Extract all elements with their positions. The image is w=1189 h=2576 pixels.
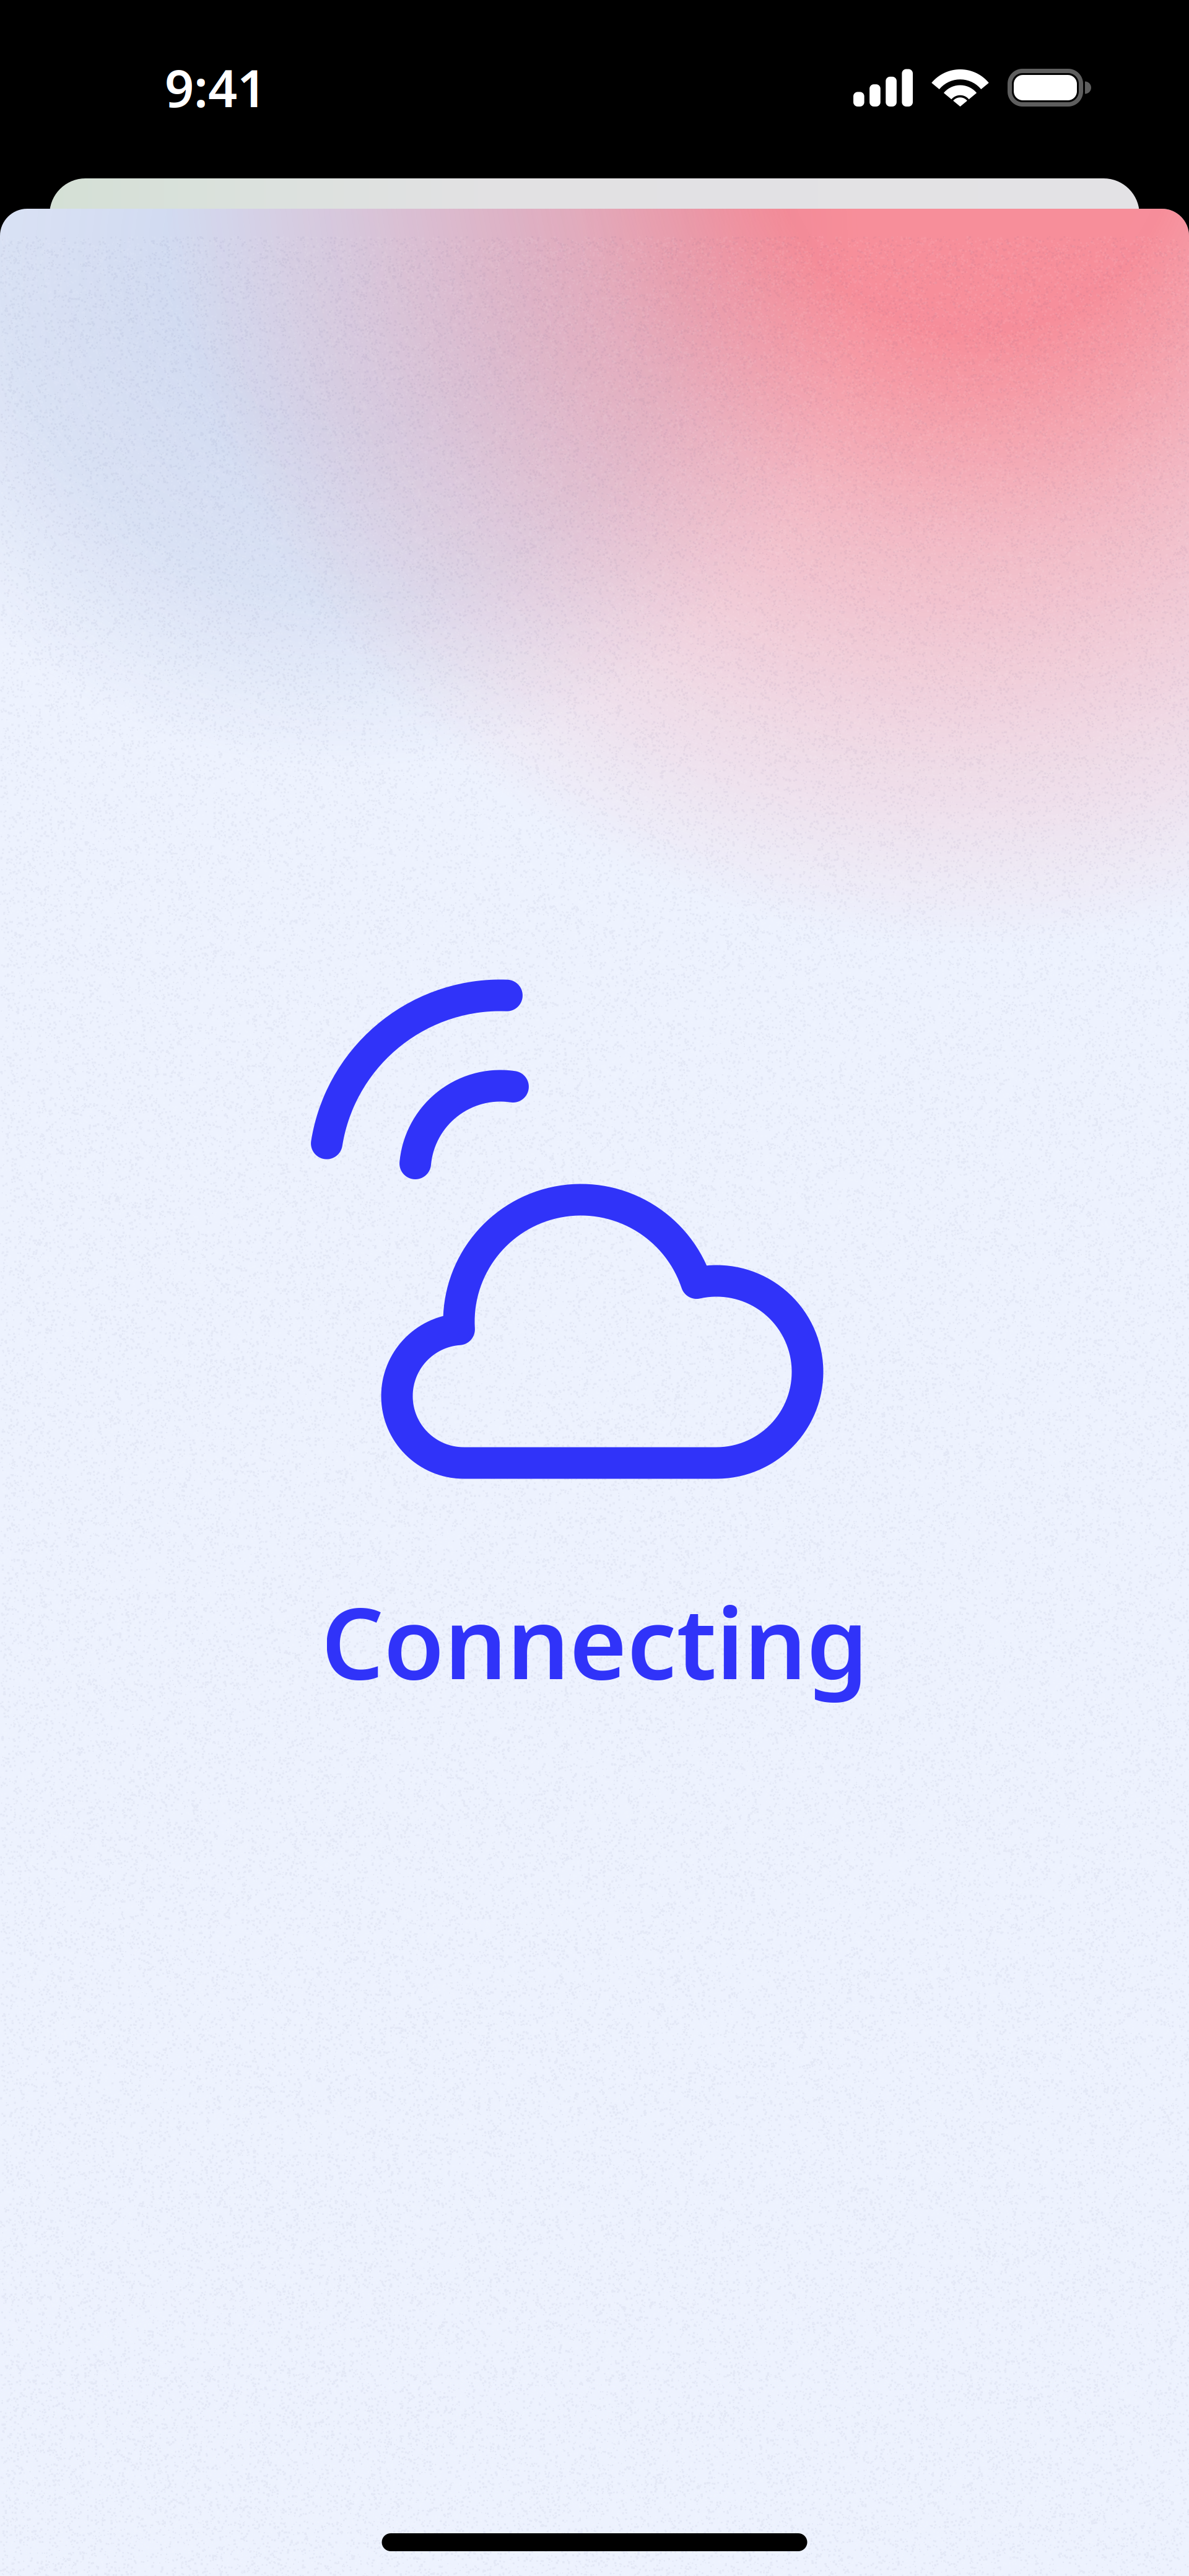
staticText: Connecting — [321, 1576, 868, 1706]
staticText: 9:41 — [165, 53, 266, 121]
